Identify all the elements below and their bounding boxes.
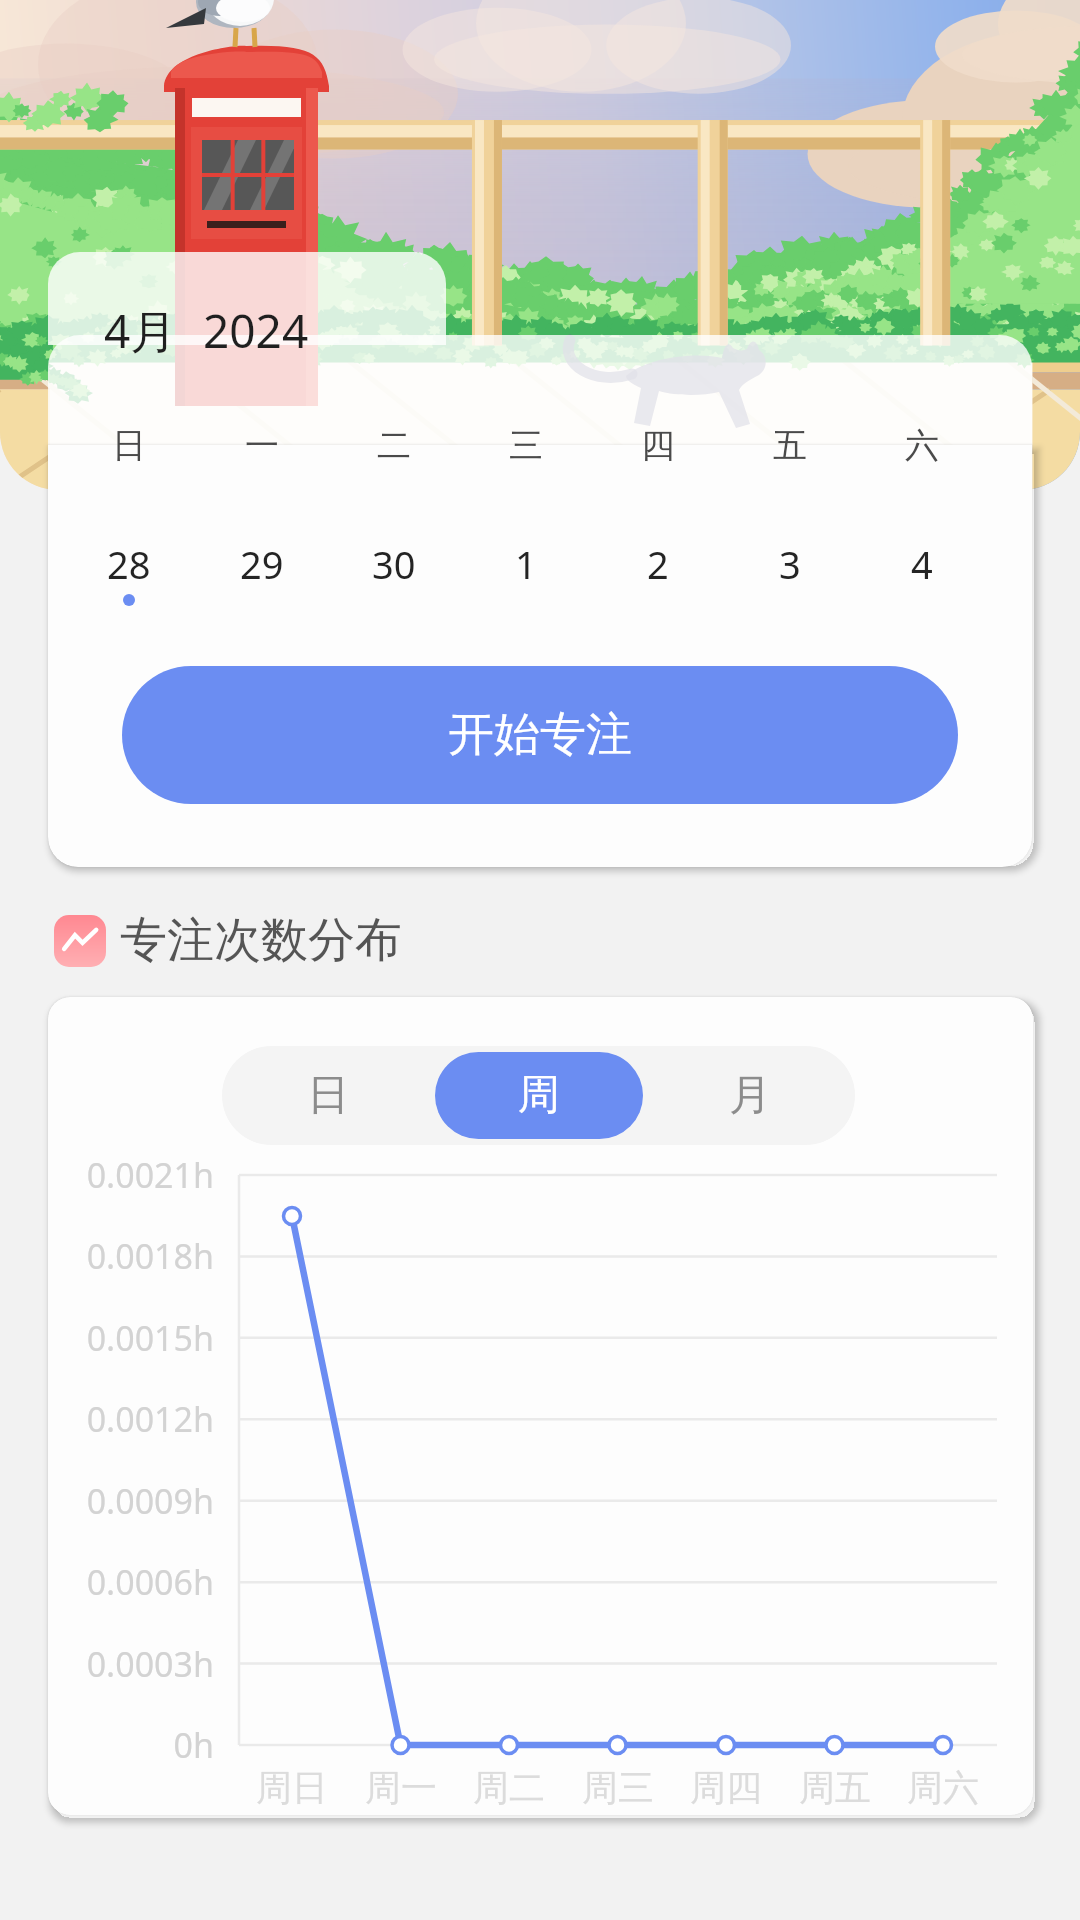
staticText: 2024 xyxy=(203,299,309,362)
staticText: 3 xyxy=(779,538,801,590)
button[interactable]: 4 xyxy=(856,538,988,606)
staticText: 五 xyxy=(773,424,807,467)
button[interactable]: 开始专注 xyxy=(122,666,958,804)
staticText: 开始专注 xyxy=(448,706,632,764)
staticText: 0.0018h xyxy=(86,1233,214,1279)
staticText: 30 xyxy=(372,538,416,590)
staticText: 0.0012h xyxy=(86,1396,214,1442)
button[interactable]: 月 xyxy=(644,1046,855,1145)
staticText: 周日 xyxy=(256,1765,328,1810)
staticText: 0.0021h xyxy=(86,1152,214,1198)
staticText: 0.0009h xyxy=(86,1478,214,1524)
staticText: 四 xyxy=(641,424,675,467)
staticText: 周二 xyxy=(473,1765,545,1810)
button[interactable]: 4月 2024 选择月份 xyxy=(48,252,446,345)
staticText: 三 xyxy=(509,424,543,467)
button[interactable]: 日 xyxy=(222,1046,433,1145)
staticText: 4月 xyxy=(104,299,177,362)
staticText: 29 xyxy=(240,538,284,590)
staticText: 周 xyxy=(518,1069,560,1122)
button[interactable]: 30 xyxy=(328,538,460,606)
staticText: 日 xyxy=(112,424,146,467)
staticText: 日 xyxy=(307,1069,349,1122)
button[interactable]: 29 xyxy=(195,538,328,606)
staticText: 二 xyxy=(377,424,411,467)
staticText: 0.0003h xyxy=(86,1641,214,1687)
staticText: 周四 xyxy=(690,1765,762,1810)
button[interactable]: 28 xyxy=(62,538,195,606)
button[interactable]: 1 xyxy=(460,538,592,606)
staticText: 一 xyxy=(245,424,279,467)
staticText: 4 xyxy=(911,538,933,590)
staticText: 周六 xyxy=(907,1765,979,1810)
button[interactable]: 2 xyxy=(592,538,724,606)
staticText: 周一 xyxy=(365,1765,437,1810)
staticText: 0.0015h xyxy=(86,1315,214,1361)
staticText: 六 xyxy=(905,424,939,467)
staticText: 周五 xyxy=(799,1765,871,1810)
staticText: 专注次数分布 xyxy=(120,911,402,970)
button[interactable]: 周 xyxy=(433,1046,644,1145)
staticText: 0.0006h xyxy=(86,1559,214,1605)
staticText: 月 xyxy=(729,1069,771,1122)
button[interactable]: 3 xyxy=(724,538,856,606)
staticText: 2 xyxy=(647,538,669,590)
staticText: 1 xyxy=(515,538,537,590)
staticText: 28 xyxy=(107,538,151,590)
staticText: 周三 xyxy=(582,1765,654,1810)
staticText: 0h xyxy=(173,1722,214,1768)
